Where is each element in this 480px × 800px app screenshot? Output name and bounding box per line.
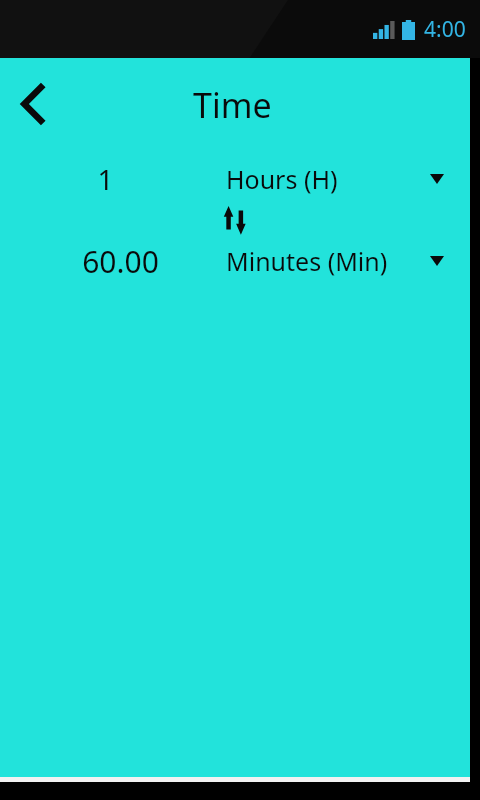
staticText: Time	[193, 82, 272, 128]
button[interactable]: 1	[30, 152, 180, 206]
button[interactable]: 60.00	[30, 234, 210, 288]
staticText: 1	[97, 160, 114, 198]
staticText: 4:00	[424, 15, 466, 44]
button[interactable]: Minutes (Min)	[190, 234, 460, 288]
button[interactable]: Swap units	[215, 200, 255, 240]
staticText: 60.00	[82, 241, 159, 282]
staticText: Minutes (Min)	[226, 244, 388, 278]
button[interactable]: Hours (H)	[190, 152, 460, 206]
button[interactable]: Back	[6, 76, 62, 132]
staticText: Hours (H)	[226, 162, 338, 196]
